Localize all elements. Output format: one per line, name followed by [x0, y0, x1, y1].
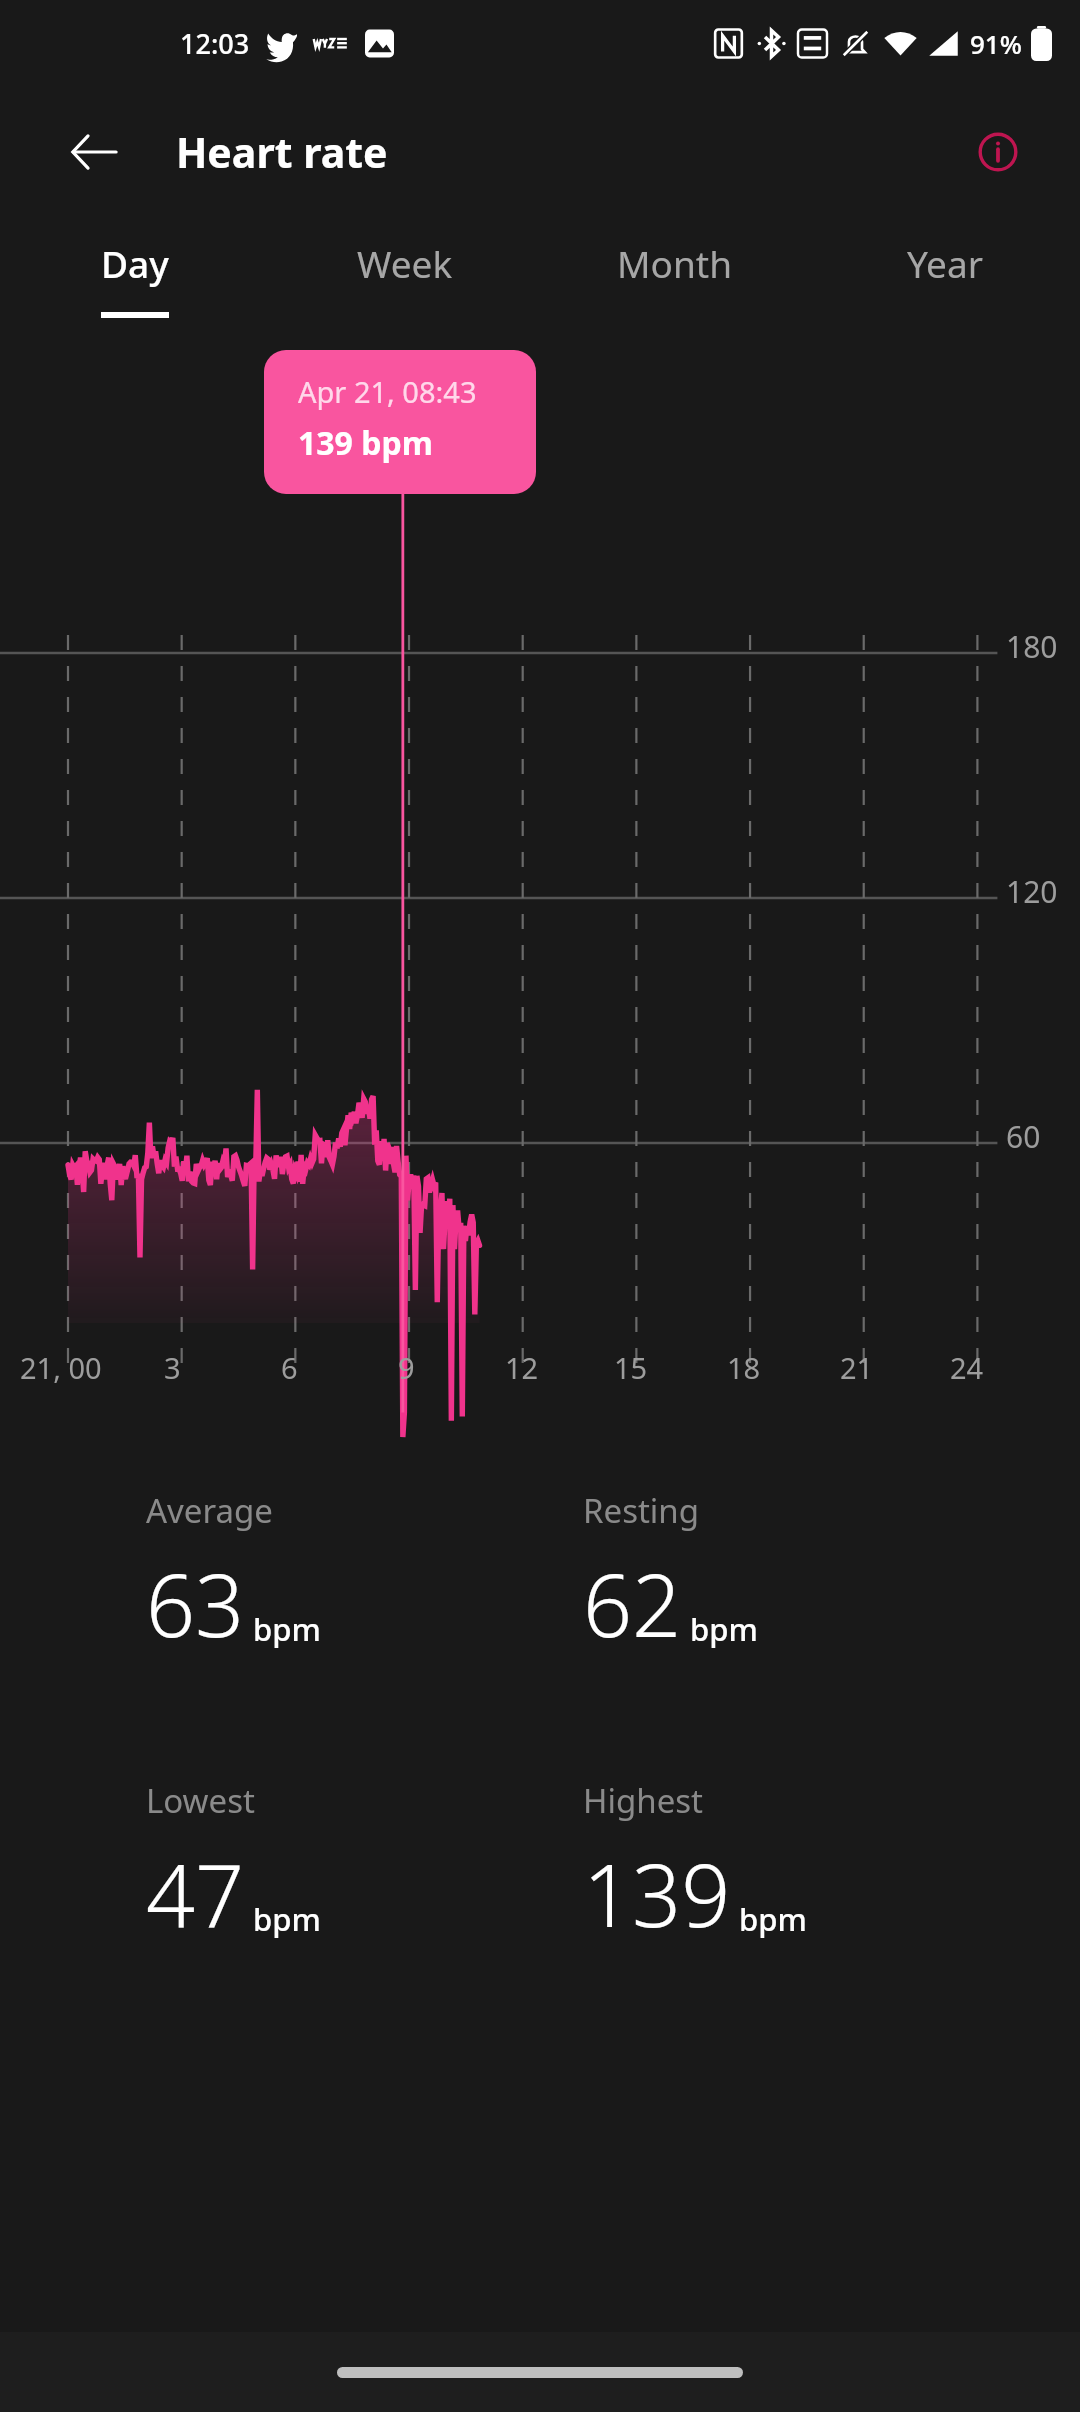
staticText: 63	[146, 1545, 245, 1662]
button[interactable]: Week	[270, 218, 540, 348]
button[interactable]: Apr 21, 08:43	[264, 350, 536, 494]
button[interactable]: Back	[54, 112, 134, 192]
staticText: Month	[617, 238, 733, 288]
staticText: 24	[950, 1348, 984, 1387]
staticText: Lowest	[146, 1778, 255, 1823]
staticText: Average	[146, 1488, 273, 1533]
staticText: 18	[727, 1348, 761, 1387]
button[interactable]: Lowest	[146, 1778, 583, 1952]
staticText: 12	[505, 1348, 539, 1387]
staticText: 6	[281, 1348, 298, 1387]
button[interactable]: Average	[146, 1488, 583, 1662]
staticText: 9	[398, 1348, 415, 1387]
staticText: 180	[1006, 626, 1058, 667]
staticText: bpm	[739, 1898, 807, 1940]
staticText: 15	[614, 1348, 648, 1387]
button[interactable]: Month	[540, 218, 810, 348]
staticText: 21	[840, 1348, 874, 1387]
staticText: 62	[583, 1545, 682, 1662]
staticText: bpm	[253, 1608, 321, 1650]
staticText: Year	[907, 238, 983, 288]
staticText: 139	[583, 1835, 731, 1952]
staticText: Apr 21, 08:43	[298, 372, 477, 411]
staticText: 21, 00	[20, 1348, 102, 1387]
staticText: 3	[164, 1348, 181, 1387]
button[interactable]: Highest	[583, 1778, 1020, 1952]
button[interactable]: Information	[958, 112, 1038, 192]
staticText: Week	[357, 238, 453, 288]
staticText: 12:03	[180, 25, 250, 62]
staticText: 139 bpm	[298, 421, 433, 465]
button[interactable]: Year	[810, 218, 1080, 348]
staticText: 47	[146, 1835, 245, 1952]
staticText: 91%	[970, 26, 1022, 61]
staticText: Highest	[583, 1778, 703, 1823]
button[interactable]: Day	[0, 218, 270, 348]
staticText: 60	[1006, 1116, 1041, 1157]
staticText: Resting	[583, 1488, 700, 1533]
button[interactable]: Resting	[583, 1488, 1020, 1662]
staticText: Day	[101, 238, 169, 288]
staticText: bpm	[253, 1898, 321, 1940]
staticText: bpm	[690, 1608, 758, 1650]
staticText: Heart rate	[176, 124, 388, 180]
staticText: 120	[1006, 871, 1058, 912]
